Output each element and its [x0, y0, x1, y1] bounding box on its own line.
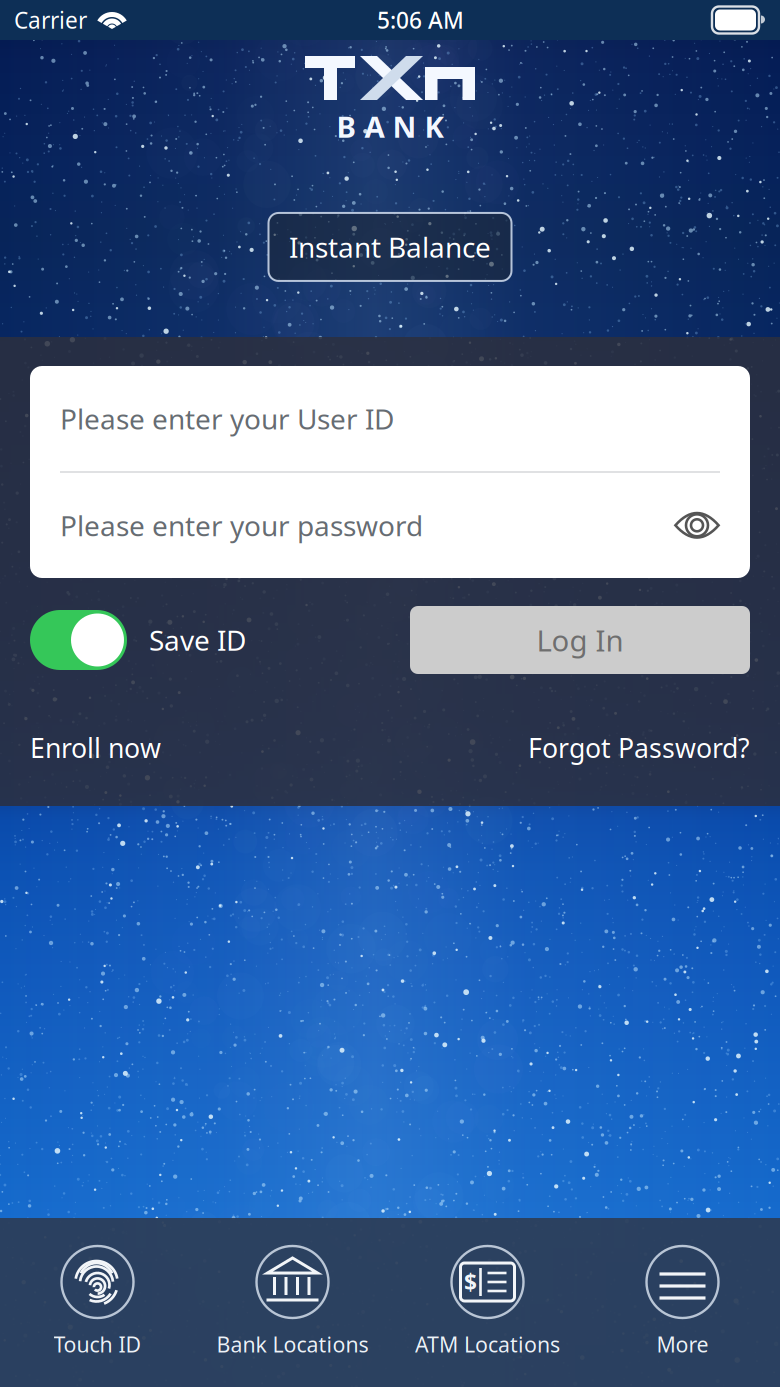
- staticText: Please enter your password: [60, 507, 423, 544]
- staticText: $: [464, 1267, 477, 1297]
- button[interactable]: Touch ID: [0, 1246, 195, 1387]
- button[interactable]: Forgot Password?: [528, 730, 750, 765]
- button[interactable]: Bank Locations: [195, 1246, 390, 1387]
- button[interactable]: $: [390, 1246, 585, 1387]
- button[interactable]: More: [585, 1246, 780, 1387]
- staticText: Forgot Password?: [528, 730, 750, 765]
- staticText: Save ID: [149, 621, 246, 659]
- staticText: Instant Balance: [289, 228, 491, 266]
- staticText: Touch ID: [53, 1330, 141, 1358]
- staticText: Enroll now: [30, 730, 161, 765]
- button[interactable]: Please enter your password: [30, 473, 750, 578]
- staticText: Log In: [536, 620, 623, 659]
- button[interactable]: Instant Balance: [268, 213, 511, 281]
- button[interactable]: Enroll now: [30, 730, 161, 765]
- staticText: B A N K: [336, 107, 443, 146]
- button[interactable]: Please enter your User ID: [30, 366, 750, 471]
- staticText: Carrier: [14, 5, 87, 35]
- button[interactable]: Save ID: [30, 610, 246, 670]
- staticText: More: [656, 1330, 708, 1358]
- staticText: Please enter your User ID: [60, 400, 394, 437]
- staticText: Bank Locations: [216, 1330, 368, 1358]
- staticText: 5:06 AM: [377, 5, 464, 35]
- staticText: ATM Locations: [415, 1330, 560, 1358]
- button[interactable]: Log In: [410, 606, 750, 674]
